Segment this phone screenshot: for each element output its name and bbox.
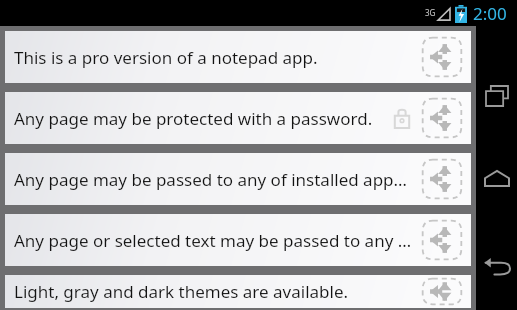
button[interactable]: This is a pro version of a notepad app. [5,31,471,83]
button[interactable]: Back [476,241,517,291]
button[interactable]: Reorder item [419,156,465,202]
button[interactable]: Any page may be protected with a passwor… [5,92,471,144]
button[interactable]: Reorder item [419,217,465,263]
staticText: Light, gray and dark themes are availabl… [14,280,413,303]
button[interactable]: Reorder item [419,34,465,80]
button[interactable]: Any page may be passed to any of install… [5,153,471,205]
staticText: Any page may be passed to any of install… [14,168,413,191]
button[interactable]: Light, gray and dark themes are availabl… [5,275,471,308]
button[interactable]: Reorder item [419,95,465,141]
staticText: Any page may be protected with a passwor… [14,107,387,130]
button[interactable]: Recent apps [476,70,517,122]
staticText: This is a pro version of a notepad app. [14,46,413,69]
staticText: Any page or selected text may be passed … [14,229,413,252]
staticText: 2:00 [473,2,507,25]
staticText: 3G [425,7,436,18]
button[interactable]: Home [476,155,517,201]
button[interactable]: Any page or selected text may be passed … [5,214,471,266]
button[interactable]: Reorder item [419,275,465,308]
